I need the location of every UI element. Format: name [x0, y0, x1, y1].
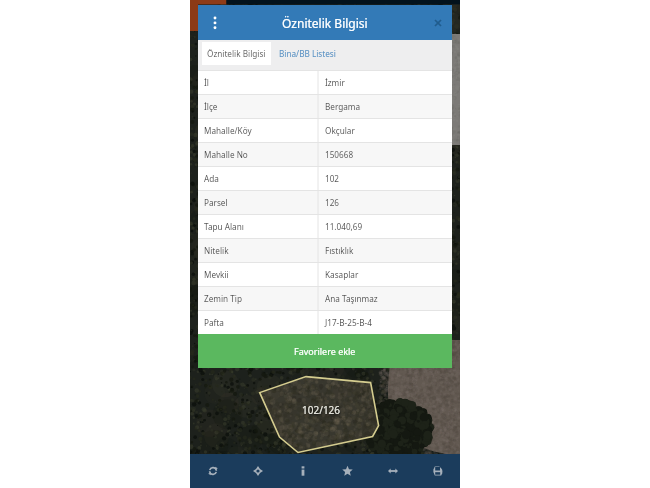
button[interactable]: Parsel — [198, 190, 452, 214]
staticText: Nitelik — [204, 245, 229, 256]
button[interactable]: Ada — [198, 166, 452, 190]
button[interactable]: İl — [198, 70, 452, 94]
staticText: Fıstıklık — [325, 245, 354, 256]
staticText: 11.040,69 — [325, 221, 363, 232]
staticText: Kasaplar — [325, 269, 359, 280]
button[interactable]: Öznitelik Bilgisi — [202, 42, 271, 65]
staticText: Zemin Tip — [204, 293, 242, 304]
button[interactable]: Measure distance — [370, 454, 415, 488]
staticText: Mevkii — [204, 269, 229, 280]
button[interactable]: Mevkii — [198, 262, 452, 286]
button[interactable]: Zemin Tip — [198, 286, 452, 310]
button[interactable]: Close — [427, 5, 449, 40]
staticText: İl — [204, 77, 209, 88]
staticText: 102/126 — [302, 403, 341, 417]
button[interactable]: Print — [415, 454, 460, 488]
staticText: Mahalle No — [204, 149, 248, 160]
button[interactable]: Info — [280, 454, 325, 488]
staticText: Bergama — [325, 101, 361, 112]
staticText: 102 — [325, 173, 340, 184]
staticText: Okçular — [325, 125, 355, 136]
button[interactable]: Nitelik — [198, 238, 452, 262]
staticText: 126 — [325, 197, 340, 208]
staticText: Öznitelik Bilgisi — [282, 15, 368, 31]
staticText: Favorilere ekle — [294, 345, 356, 357]
staticText: Parsel — [204, 197, 228, 208]
staticText: Ada — [204, 173, 219, 184]
button[interactable]: Bina/BB Listesi — [264, 42, 350, 65]
button[interactable]: Mahalle/Köy — [198, 118, 452, 142]
staticText: İzmir — [325, 77, 345, 88]
staticText: İlçe — [204, 101, 218, 112]
button[interactable]: Tapu Alanı — [198, 214, 452, 238]
staticText: Pafta — [204, 317, 224, 328]
button[interactable]: İlçe — [198, 94, 452, 118]
button[interactable]: Favorilere ekle — [198, 334, 452, 368]
button[interactable]: Favorites — [325, 454, 370, 488]
button[interactable]: More options — [204, 5, 226, 40]
staticText: Öznitelik Bilgisi — [207, 48, 266, 59]
staticText: J17-B-25-B-4 — [325, 317, 372, 328]
staticText: Bina/BB Listesi — [279, 48, 336, 59]
staticText: Ana Taşınmaz — [325, 293, 378, 304]
button[interactable]: Refresh — [190, 454, 235, 488]
button[interactable]: Pafta — [198, 310, 452, 334]
staticText: Tapu Alanı — [204, 221, 244, 232]
staticText: 150668 — [325, 149, 354, 160]
staticText: Mahalle/Köy — [204, 125, 252, 136]
button[interactable]: My location — [235, 454, 280, 488]
button[interactable]: Mahalle No — [198, 142, 452, 166]
